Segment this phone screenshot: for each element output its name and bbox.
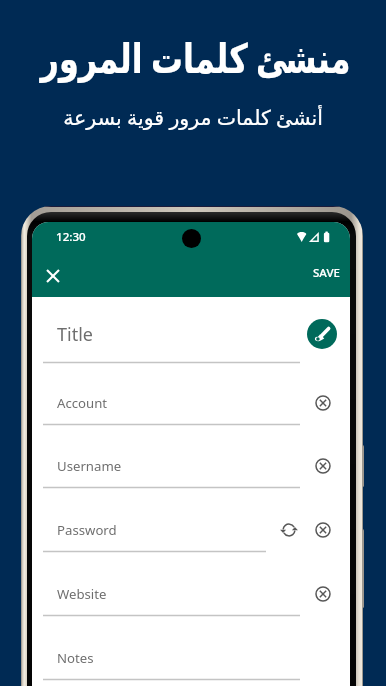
button[interactable]: Close	[36, 259, 70, 293]
button[interactable]: Generate password	[277, 518, 301, 542]
staticText: منشئ كلمات المرور	[40, 29, 351, 84]
button[interactable]: Power button	[360, 445, 364, 487]
button[interactable]: Clear	[311, 454, 335, 478]
button[interactable]: Clear	[311, 391, 335, 415]
button[interactable]: Pick colour	[307, 319, 337, 349]
button[interactable]: Title	[32, 314, 350, 370]
button[interactable]: Volume button	[360, 529, 364, 608]
staticText: SAVE	[313, 265, 340, 281]
staticText: Username	[57, 457, 122, 475]
staticText: Website	[57, 585, 107, 603]
staticText: Account	[57, 394, 108, 412]
staticText: Password	[57, 521, 117, 539]
button[interactable]: SAVE	[310, 260, 342, 286]
button[interactable]: Username	[32, 439, 350, 495]
staticText: Notes	[57, 649, 94, 667]
button[interactable]: Account	[32, 376, 350, 432]
button[interactable]: Notes	[32, 631, 350, 686]
button[interactable]: Clear	[311, 518, 335, 542]
staticText: Title	[57, 322, 93, 347]
button[interactable]: Website	[32, 567, 350, 623]
staticText: 12:30	[56, 229, 86, 245]
button[interactable]: Clear	[311, 582, 335, 606]
button[interactable]: Password	[32, 503, 350, 559]
staticText: أنشئ كلمات مرور قوية بسرعة	[63, 103, 323, 131]
